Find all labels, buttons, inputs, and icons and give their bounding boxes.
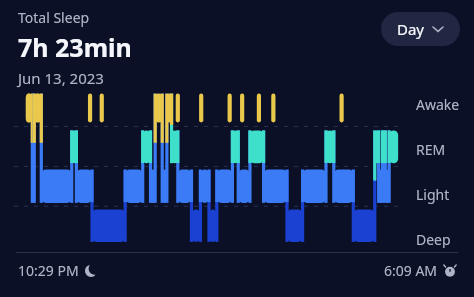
staticText: Light bbox=[416, 185, 450, 204]
staticText: Total Sleep bbox=[18, 8, 90, 27]
staticText: Day bbox=[397, 19, 425, 39]
other: Bedtime bbox=[85, 265, 97, 277]
other: Wake time bbox=[444, 265, 456, 277]
staticText: 10:29 PM bbox=[18, 261, 79, 280]
staticText: REM bbox=[416, 140, 446, 159]
button[interactable]: Day bbox=[381, 12, 460, 46]
staticText: 7h 23min bbox=[18, 30, 132, 64]
staticText: Deep bbox=[416, 230, 451, 248]
staticText: Jun 13, 2023 bbox=[18, 68, 104, 88]
staticText: Awake bbox=[416, 95, 460, 114]
staticText: 6:09 AM bbox=[384, 261, 438, 280]
